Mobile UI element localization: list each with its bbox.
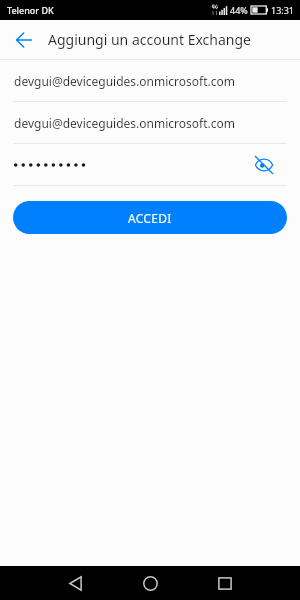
staticText: Aggiungi un account Exchange	[48, 30, 251, 49]
button[interactable]: devgui@deviceguides.onmicrosoft.com	[13, 102, 287, 143]
staticText: Telenor DK	[7, 4, 54, 16]
button[interactable]: Show password	[13, 144, 287, 185]
staticText: 44%	[230, 4, 248, 16]
staticText: ACCEDI	[128, 210, 172, 226]
button[interactable]: Recents	[195, 566, 255, 600]
button[interactable]: Home	[120, 566, 180, 600]
button[interactable]: ACCEDI	[13, 201, 287, 234]
staticText: devgui@deviceguides.onmicrosoft.com	[14, 115, 235, 131]
button[interactable]: devgui@deviceguides.onmicrosoft.com	[13, 60, 287, 101]
staticText: 13:31	[271, 4, 295, 16]
button[interactable]: Back	[0, 20, 40, 59]
button[interactable]: Back	[45, 566, 105, 600]
staticText: devgui@deviceguides.onmicrosoft.com	[14, 73, 235, 89]
button[interactable]: Show password	[249, 150, 279, 180]
